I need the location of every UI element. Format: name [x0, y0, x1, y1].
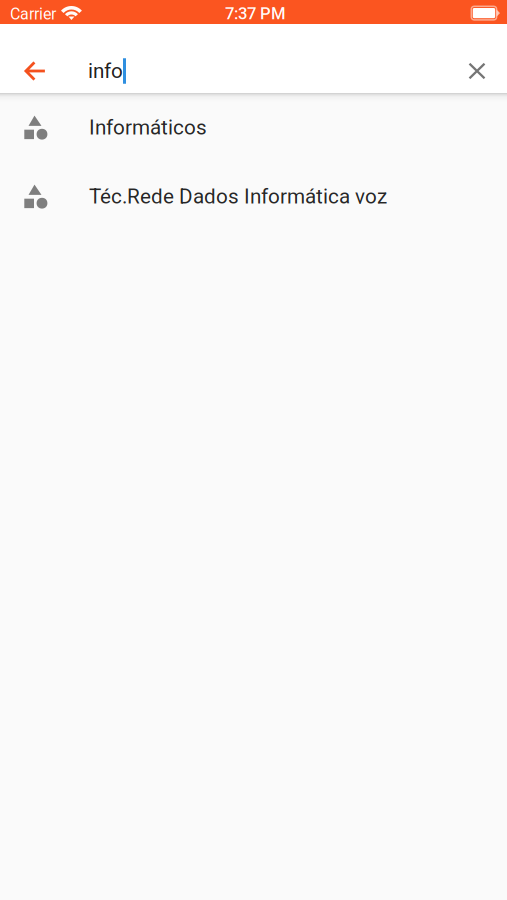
staticText: Informáticos	[89, 115, 207, 140]
staticText: info	[88, 59, 123, 83]
button[interactable]: Téc.Rede Dados Informática voz	[0, 162, 507, 231]
staticText: 7:37 PM	[225, 4, 286, 23]
button[interactable]: info	[57, 49, 458, 93]
staticText: Téc.Rede Dados Informática voz	[89, 184, 387, 209]
staticText: Carrier	[10, 5, 56, 23]
button[interactable]: Back	[13, 49, 57, 93]
button[interactable]: Informáticos	[0, 93, 507, 162]
button[interactable]: Clear search	[458, 49, 496, 93]
